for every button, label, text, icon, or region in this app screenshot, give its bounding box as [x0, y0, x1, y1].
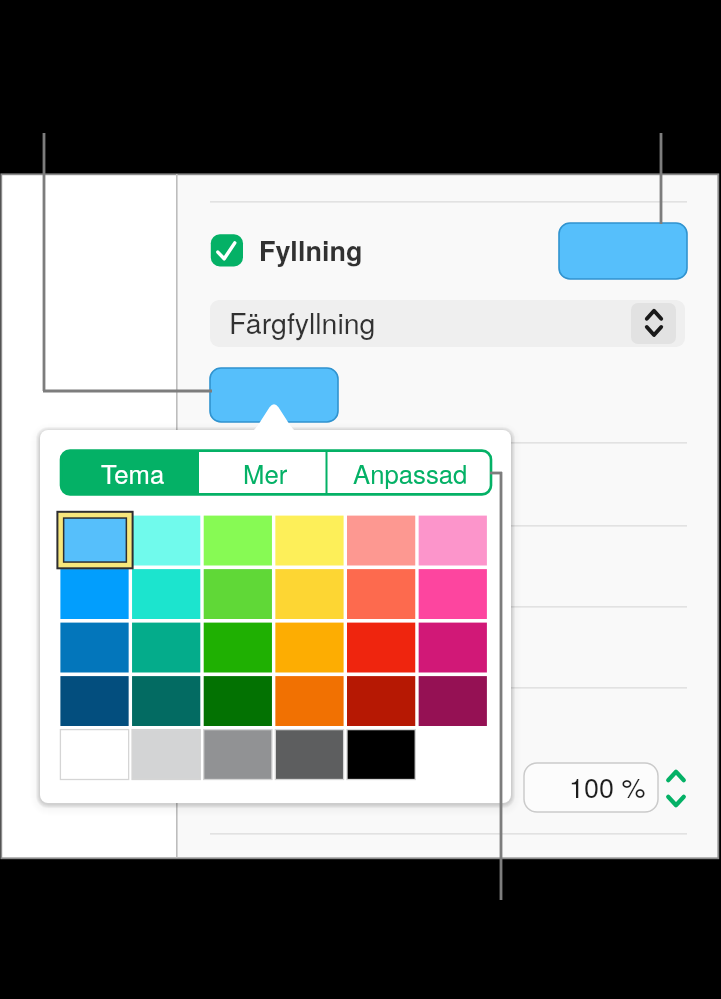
button[interactable]: Colour swatch row 3 column 2	[132, 622, 200, 671]
staticText: Anpassad	[353, 454, 468, 491]
staticText: Fyllning	[259, 231, 363, 270]
staticText: 100 %	[569, 767, 646, 806]
button[interactable]: Colour swatch row 1 column 5	[347, 515, 415, 564]
button[interactable]: Colour swatch row 5 column 5	[347, 729, 415, 778]
staticText: Mer	[243, 454, 288, 491]
button[interactable]: Colour swatch row 5 column 1	[60, 729, 128, 778]
staticText: Färgfyllning	[229, 301, 376, 342]
button[interactable]: Colour swatch row 1 column 4	[275, 515, 343, 564]
button[interactable]: Colour swatch row 4 column 4	[275, 676, 343, 725]
button[interactable]: Colour swatch row 2 column 3	[203, 569, 271, 618]
button[interactable]: Colour swatch row 2 column 2	[132, 569, 200, 618]
button[interactable]: Fyllning checkbox	[211, 234, 243, 265]
button[interactable]: Colour swatch row 1 column 3	[203, 515, 271, 564]
button[interactable]: Colour swatch row 1 column 1	[60, 515, 128, 564]
button[interactable]: Colour swatch row 2 column 4	[275, 569, 343, 618]
button[interactable]: Colour swatch row 2 column 1	[60, 569, 128, 618]
button[interactable]: Colour swatch row 5 column 3	[203, 729, 271, 778]
button[interactable]: Tema	[61, 450, 199, 493]
button[interactable]: Colour swatch row 4 column 1	[60, 676, 128, 725]
button[interactable]: Anpassad	[325, 450, 490, 493]
button[interactable]: Increase opacity	[663, 763, 691, 788]
button[interactable]: Colour swatch row 4 column 5	[347, 676, 415, 725]
button[interactable]: Colour well	[210, 368, 338, 422]
button[interactable]: Colour swatch row 4 column 6	[418, 676, 486, 725]
button[interactable]: Colour swatch row 1 column 6	[418, 515, 486, 564]
button[interactable]: Colour swatch row 4 column 3	[203, 676, 271, 725]
button[interactable]: Colour swatch row 3 column 5	[347, 622, 415, 671]
button[interactable]: Colour swatch row 3 column 3	[203, 622, 271, 671]
button[interactable]: Colour swatch row 5 column 4	[275, 729, 343, 778]
button[interactable]: Colour swatch row 4 column 2	[132, 676, 200, 725]
button[interactable]: Colour swatch row 2 column 6	[418, 569, 486, 618]
button[interactable]: Colour swatch row 3 column 4	[275, 622, 343, 671]
button[interactable]: Färgfyllning	[210, 300, 685, 347]
button[interactable]: Decrease opacity	[663, 788, 691, 813]
button[interactable]: Colour swatch row 3 column 6	[418, 622, 486, 671]
button[interactable]: Mer	[199, 450, 325, 493]
button[interactable]: Colour swatch row 3 column 1	[60, 622, 128, 671]
button[interactable]: Fill colour	[559, 223, 687, 279]
button[interactable]: Colour swatch row 1 column 2	[132, 515, 200, 564]
button[interactable]: Opacity 100 percent	[524, 763, 658, 812]
staticText: Tema	[101, 454, 165, 491]
